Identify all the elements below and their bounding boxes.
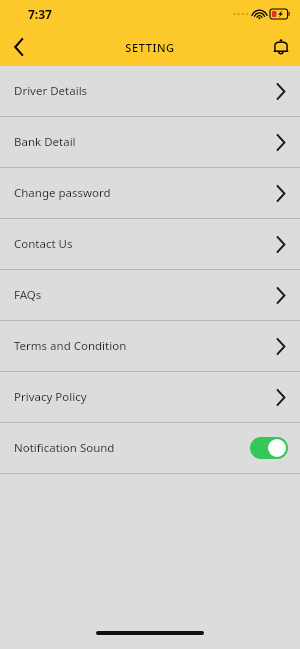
staticText: FAQs: [14, 287, 275, 303]
staticText: Change password: [14, 185, 275, 201]
button[interactable]: Notification Sound toggle, on: [250, 437, 288, 459]
staticText: 7:37: [28, 6, 52, 22]
staticText: Contact Us: [14, 236, 275, 252]
staticText: Driver Details: [14, 83, 275, 99]
button[interactable]: Terms and Condition: [0, 321, 300, 371]
button[interactable]: Contact Us: [0, 219, 300, 269]
staticText: Privacy Policy: [14, 389, 275, 405]
staticText: Notification Sound: [14, 440, 250, 456]
button[interactable]: Change password: [0, 168, 300, 218]
button[interactable]: Notifications: [262, 28, 300, 66]
button[interactable]: Notification Sound: [0, 423, 300, 473]
button[interactable]: Bank Detail: [0, 117, 300, 167]
button[interactable]: Driver Details: [0, 66, 300, 116]
button[interactable]: FAQs: [0, 270, 300, 320]
staticText: Terms and Condition: [14, 338, 275, 354]
button[interactable]: Back: [0, 28, 38, 66]
staticText: SETTING: [125, 40, 175, 55]
button[interactable]: Privacy Policy: [0, 372, 300, 422]
staticText: Bank Detail: [14, 134, 275, 150]
